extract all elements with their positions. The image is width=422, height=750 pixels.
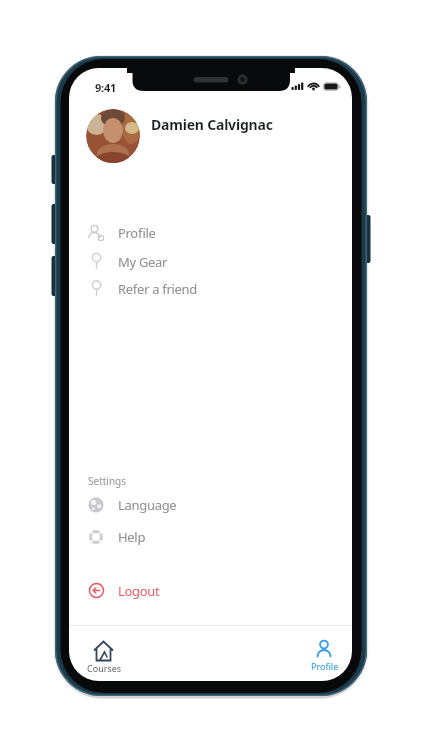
staticText: Courses [87, 662, 122, 674]
staticText: 9:41 [95, 80, 117, 95]
staticText: Settings [88, 474, 127, 488]
button[interactable]: Profile [300, 628, 350, 678]
staticText: Refer a friend [118, 280, 198, 298]
staticText: My Gear [118, 253, 168, 271]
staticText: Profile [118, 224, 156, 242]
button[interactable]: Courses [79, 628, 129, 678]
staticText: Damien Calvignac [151, 115, 273, 134]
staticText: Logout [118, 582, 160, 600]
button[interactable]: My Gear [83, 248, 253, 276]
staticText: Profile [311, 660, 339, 672]
button[interactable]: Profile [83, 219, 253, 247]
button[interactable]: Help [83, 523, 253, 551]
button[interactable]: Refer a friend [83, 275, 253, 303]
button[interactable]: Language [83, 491, 253, 519]
button[interactable]: Logout [83, 577, 253, 605]
staticText: Help [118, 528, 146, 546]
staticText: Language [118, 496, 177, 514]
